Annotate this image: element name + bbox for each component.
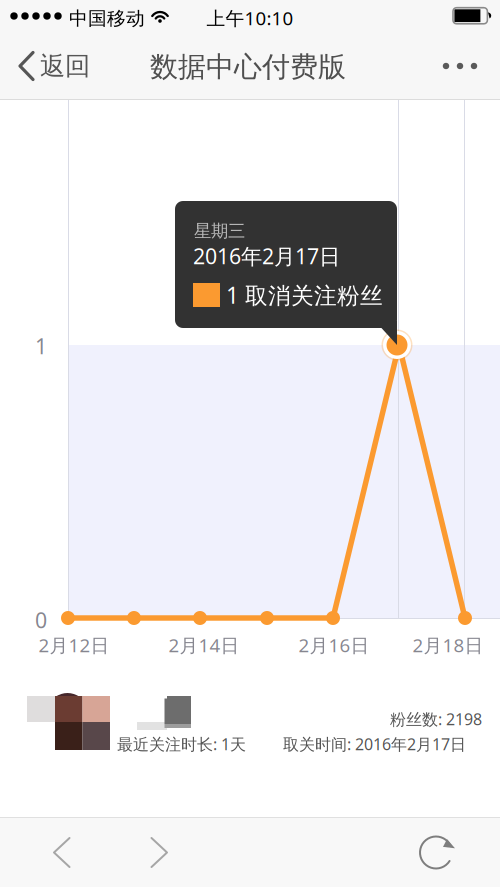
staticText: 0	[35, 606, 47, 634]
staticText: 中国移动	[69, 7, 145, 30]
button[interactable]: Forward	[122, 817, 196, 887]
button[interactable]: Reload	[399, 817, 473, 887]
staticText: 取关时间: 2016年2月17日	[283, 733, 466, 755]
staticText: 1 取消关注粉丝	[226, 280, 383, 310]
staticText: 数据中心付费版	[150, 50, 346, 84]
staticText: 2月14日	[168, 633, 239, 657]
staticText: 最近关注时长: 1天	[117, 733, 246, 755]
button[interactable]: More	[438, 36, 500, 96]
staticText: 星期三	[194, 220, 245, 242]
button[interactable]: Back	[24, 817, 98, 887]
staticText: 2月12日	[38, 633, 109, 657]
staticText: 粉丝数: 2198	[390, 708, 482, 730]
staticText: 1	[35, 332, 47, 360]
staticText: 2月16日	[298, 633, 369, 657]
staticText: 2016年2月17日	[193, 242, 340, 270]
button[interactable]: 返回	[0, 36, 102, 96]
staticText: 2月18日	[412, 633, 483, 657]
staticText: 返回	[40, 50, 90, 81]
staticText: 上午10:10	[206, 6, 293, 30]
